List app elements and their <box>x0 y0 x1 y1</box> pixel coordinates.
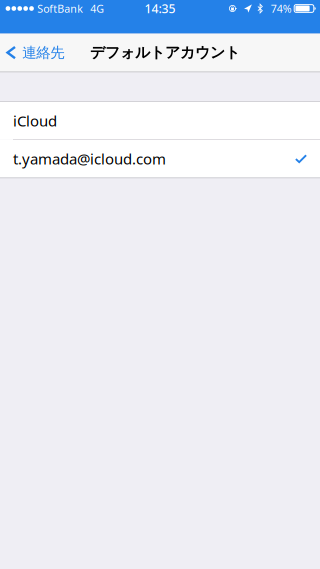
staticText: 4G <box>90 1 104 16</box>
staticText: 74% <box>271 1 292 16</box>
staticText: SoftBank <box>37 1 83 16</box>
button[interactable]: 連絡先 <box>0 34 72 72</box>
staticText: 連絡先 <box>22 43 64 62</box>
staticText: iCloud <box>13 110 57 131</box>
button[interactable]: t.yamada@icloud.com <box>0 140 320 177</box>
staticText: デフォルトアカウント <box>90 43 240 62</box>
button[interactable]: iCloud <box>0 102 320 139</box>
staticText: 14:35 <box>144 0 175 17</box>
staticText: t.yamada@icloud.com <box>13 148 166 169</box>
